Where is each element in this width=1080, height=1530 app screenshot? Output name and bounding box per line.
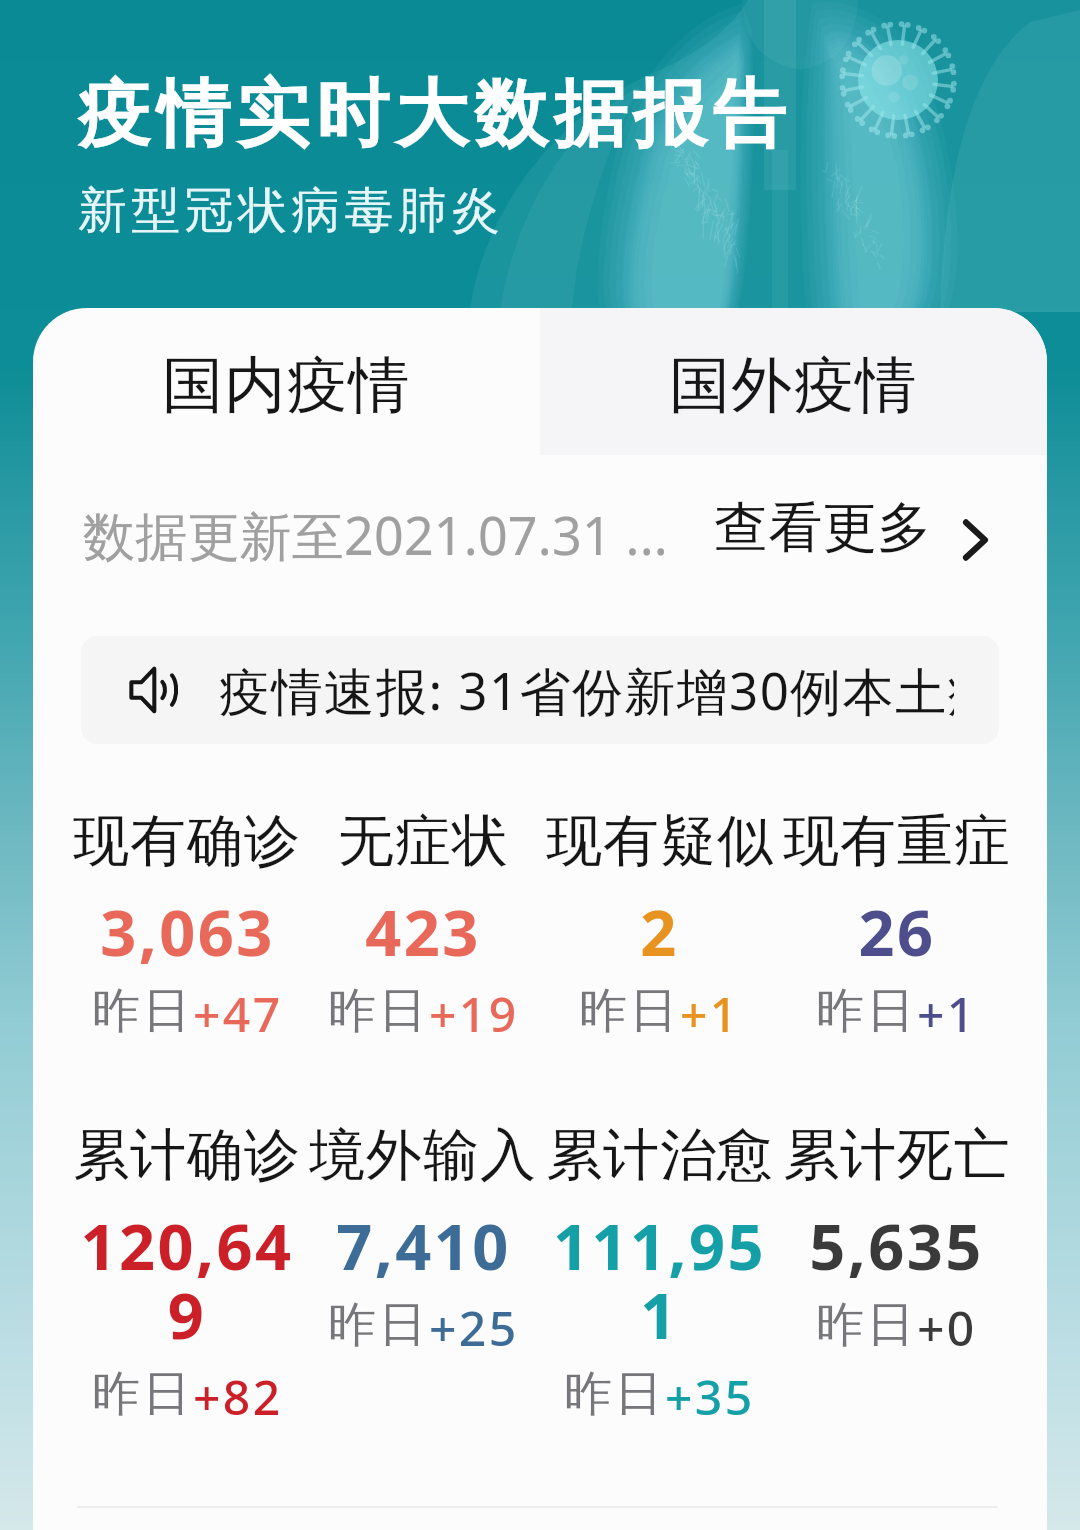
staticText: +1 <box>680 981 740 1046</box>
staticText: 累计治愈 <box>546 1120 774 1191</box>
staticText: 国外疫情 <box>669 347 918 424</box>
staticText: 数据更新至2021.07.31 ... <box>83 499 668 570</box>
staticText: +1 <box>917 981 977 1046</box>
button[interactable]: 累计死亡 <box>778 1120 1015 1360</box>
staticText: 累计确诊 <box>73 1120 301 1191</box>
staticText: +0 <box>917 1295 977 1360</box>
staticText: 111,951 <box>541 1203 778 1358</box>
button[interactable]: Announcements <box>81 636 999 744</box>
other: More <box>955 518 999 562</box>
staticText: 昨日 <box>816 981 917 1041</box>
staticText: +35 <box>665 1364 755 1429</box>
staticText: 无症状 <box>338 806 509 877</box>
staticText: 2 <box>640 889 679 975</box>
staticText: 累计死亡 <box>783 1120 1011 1191</box>
staticText: 3,063 <box>100 889 275 975</box>
staticText: 昨日 <box>92 981 193 1041</box>
staticText: 昨日 <box>328 1295 429 1355</box>
staticText: 7,410 <box>336 1203 511 1289</box>
staticText: 新型冠状病毒肺炎 <box>78 180 505 242</box>
staticText: 境外输入 <box>309 1120 537 1191</box>
button[interactable]: 国内疫情 <box>33 316 540 455</box>
staticText: +47 <box>193 981 283 1046</box>
staticText: 昨日 <box>328 981 429 1041</box>
button[interactable]: 累计确诊 <box>69 1120 305 1429</box>
staticText: 疫情实时大数据报告 <box>78 69 792 161</box>
staticText: 查看更多 <box>714 494 932 562</box>
button[interactable]: 累计治愈 <box>541 1120 778 1429</box>
button[interactable]: 无症状 <box>305 806 541 1046</box>
staticText: 现有确诊 <box>73 806 301 877</box>
staticText: 现有疑似 <box>546 806 774 877</box>
button[interactable]: 现有疑似 <box>541 806 778 1046</box>
staticText: 昨日 <box>816 1295 917 1355</box>
staticText: 疫情速报: 31省份新增30例本土病例 <box>219 655 954 725</box>
other: Announcements <box>128 662 184 718</box>
button[interactable]: 现有重症 <box>778 806 1015 1046</box>
staticText: +82 <box>193 1364 283 1429</box>
button[interactable]: 查看更多 <box>714 494 999 562</box>
staticText: 423 <box>365 889 481 975</box>
staticText: 120,649 <box>69 1203 305 1358</box>
staticText: 5,635 <box>809 1203 984 1289</box>
staticText: +19 <box>429 981 519 1046</box>
staticText: 现有重症 <box>783 806 1011 877</box>
button[interactable]: 境外输入 <box>305 1120 541 1360</box>
staticText: 昨日 <box>92 1364 193 1424</box>
staticText: +25 <box>429 1295 519 1360</box>
staticText: 昨日 <box>564 1364 665 1424</box>
button[interactable]: 国外疫情 <box>540 308 1047 455</box>
staticText: 国内疫情 <box>162 347 411 424</box>
button[interactable]: 现有确诊 <box>69 806 305 1046</box>
staticText: 昨日 <box>579 981 680 1041</box>
staticText: 26 <box>858 889 936 975</box>
